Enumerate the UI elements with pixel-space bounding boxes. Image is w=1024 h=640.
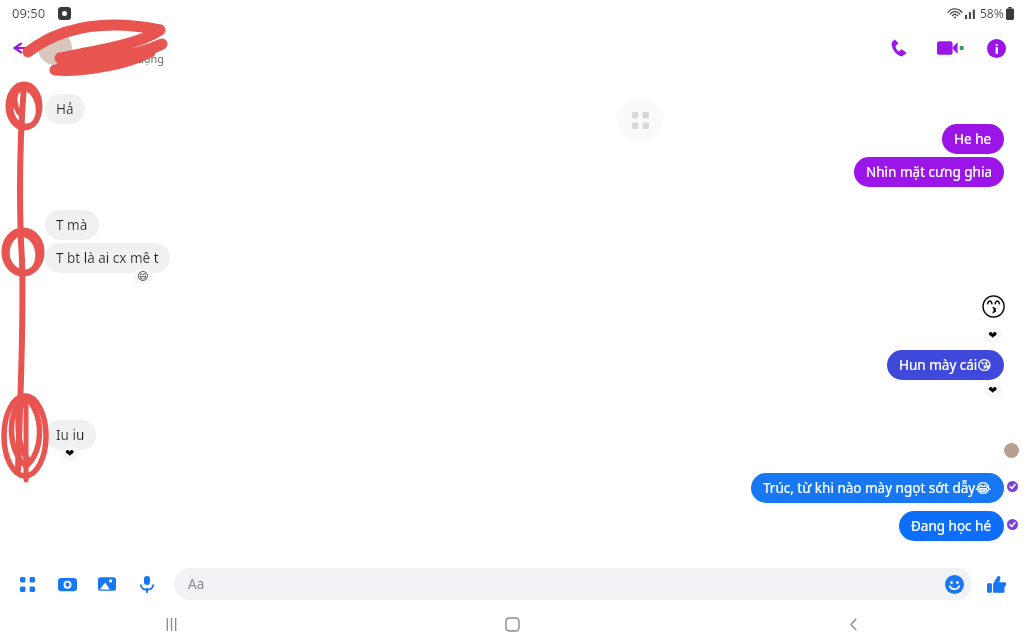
button[interactable]: Đang học hé (899, 511, 1004, 541)
button[interactable]: Iu iu (45, 420, 96, 450)
button[interactable]: Camera (52, 569, 82, 599)
button[interactable]: Back (683, 608, 1024, 640)
staticText: He he (954, 130, 992, 148)
staticText: Hun mày cái😘 (899, 356, 992, 374)
button[interactable]: Info (980, 32, 1012, 64)
button[interactable]: Gallery (92, 569, 122, 599)
button[interactable]: T mà (45, 210, 99, 240)
staticText: Đang hoạt động (80, 51, 165, 66)
button[interactable]: Nhìn mặt cưng ghia (854, 157, 1004, 187)
staticText: Đang học hé (911, 517, 992, 535)
button[interactable]: He he (942, 124, 1004, 154)
staticText: Iu iu (56, 426, 85, 444)
staticText: T mà (56, 216, 88, 234)
staticText: Hả (56, 100, 74, 118)
button[interactable]: Hả (45, 94, 85, 124)
staticText: T bt là ai cx mê t (56, 249, 159, 267)
button[interactable]: Trúc, từ khi nào mày ngọt sớt dẫy😂 (751, 473, 1004, 503)
staticText: 😙 (980, 292, 1008, 322)
staticText: ❤️ (988, 384, 998, 397)
button[interactable]: Video call (930, 28, 970, 68)
staticText: 58% (980, 5, 1004, 21)
button[interactable]: Send like (980, 568, 1012, 600)
staticText: 09:50 (12, 4, 46, 22)
button[interactable]: Back (6, 32, 38, 64)
button[interactable]: T bt là ai cx mê t (45, 243, 170, 273)
staticText: ❤️ (65, 447, 75, 460)
staticText: ❤️ (988, 329, 998, 342)
button[interactable]: Aa (174, 568, 972, 600)
button[interactable]: Recents (0, 608, 342, 640)
button[interactable]: Home (342, 608, 683, 640)
button[interactable]: Open apps (12, 569, 42, 599)
button[interactable]: More options (617, 97, 663, 143)
staticText: Nhìn mặt cưng ghia (866, 163, 992, 181)
button[interactable]: Emoji (945, 575, 964, 594)
staticText: Trúc, từ khi nào mày ngọt sớt dẫy😂 (763, 479, 992, 497)
staticText: 😄 (137, 270, 149, 283)
button[interactable]: Hun mày cái😘 (887, 350, 1004, 380)
button[interactable]: Voice message (132, 569, 162, 599)
staticText: i (995, 41, 999, 57)
staticText: Aa (188, 575, 205, 593)
button[interactable]: Voice call (882, 31, 916, 65)
